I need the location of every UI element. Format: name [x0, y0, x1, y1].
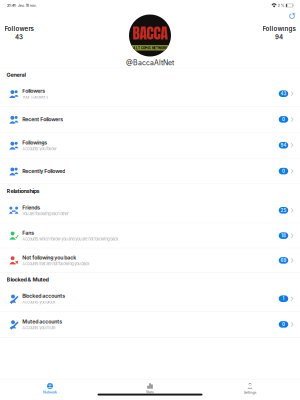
staticText: Network — [43, 390, 57, 394]
button[interactable]: Network — [0, 382, 100, 395]
staticText: ALT COMIC NETWORK — [133, 46, 167, 50]
staticText: Accounts you follow — [22, 146, 56, 151]
staticText: 0 — [282, 117, 285, 122]
staticText: 69 — [280, 258, 286, 263]
staticText: 1 — [282, 296, 284, 301]
staticText: Accounts which follow you and you are no… — [22, 237, 118, 241]
staticText: Followings — [22, 139, 47, 146]
staticText: Recently Followed — [22, 168, 65, 174]
staticText: 43 — [280, 91, 286, 96]
button[interactable]: Refresh — [288, 11, 300, 19]
staticText: General — [6, 71, 25, 78]
button[interactable]: Followings — [0, 132, 300, 158]
staticText: 94 — [280, 143, 286, 148]
button[interactable]: Muted accounts — [0, 312, 300, 337]
staticText: Muted accounts — [22, 318, 62, 325]
button[interactable]: Blocked accounts — [0, 286, 300, 312]
staticText: Followers — [22, 88, 45, 94]
staticText: 25 — [280, 208, 286, 213]
staticText: Relationships — [6, 188, 39, 194]
staticText: 21:41 — [7, 3, 16, 8]
staticText: Blocked & Muted — [6, 276, 48, 283]
staticText: Fans — [22, 230, 34, 236]
staticText: 2 % — [278, 3, 285, 8]
staticText: Friends — [22, 204, 40, 211]
staticText: 94 — [275, 33, 283, 41]
staticText: Followers — [4, 25, 33, 32]
staticText: @BaccaAltNet — [126, 58, 174, 67]
button[interactable]: Stats — [100, 382, 200, 395]
staticText: 43 — [15, 33, 23, 41]
staticText: Settings — [243, 390, 256, 395]
staticText: You are following each other — [22, 211, 69, 216]
staticText: 18 — [281, 233, 286, 238]
button[interactable]: Fans — [0, 223, 300, 248]
staticText: 0 — [282, 322, 285, 327]
button[interactable]: Friends — [0, 198, 300, 223]
staticText: Recent Followers — [22, 116, 63, 123]
staticText: Blocked accounts — [22, 293, 65, 299]
button[interactable]: Not following you back — [0, 248, 300, 273]
button[interactable]: Recent Followers — [0, 107, 300, 132]
button[interactable]: Followers — [0, 81, 300, 107]
staticText: Followings — [262, 25, 295, 32]
button[interactable]: Recently Followed — [0, 158, 300, 184]
staticText: Accounts that are not following you back — [22, 261, 89, 266]
staticText: BACCA — [132, 21, 167, 45]
staticText: Your Followers — [22, 95, 48, 99]
staticText: Jeu. 18 nov. — [18, 3, 37, 8]
staticText: 0 — [282, 168, 285, 174]
button[interactable]: Settings — [200, 382, 300, 395]
staticText: Accounts you mute — [22, 325, 55, 330]
staticText: Not following you back — [22, 254, 76, 261]
staticText: Accounts you block — [22, 300, 55, 304]
staticText: Stats — [146, 390, 154, 394]
